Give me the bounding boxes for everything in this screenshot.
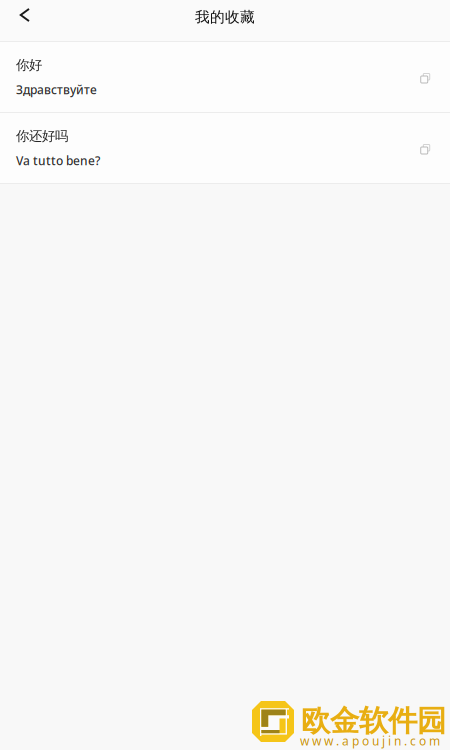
staticText: 你好	[16, 57, 42, 73]
staticText: 我的收藏	[195, 8, 255, 26]
button[interactable]: Back	[0, 0, 48, 41]
button[interactable]: 你还好吗	[0, 113, 450, 183]
staticText: w w w . a p o u j i n . c o m	[300, 733, 440, 749]
staticText: 欧金软件园	[301, 703, 446, 739]
staticText: Здравствуйте	[16, 81, 97, 97]
staticText: 你还好吗	[16, 128, 68, 144]
staticText: Va tutto bene?	[16, 152, 100, 168]
button[interactable]: 你好	[0, 42, 450, 112]
